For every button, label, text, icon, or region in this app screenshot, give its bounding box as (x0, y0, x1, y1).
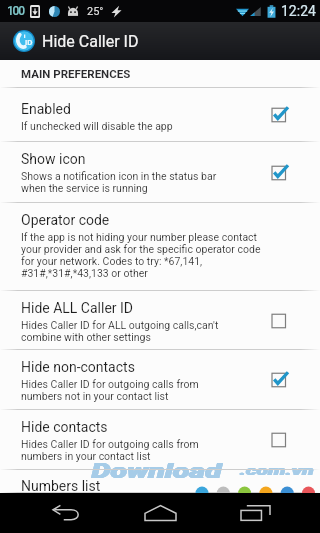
staticText: Hide ALL Caller ID (21, 300, 134, 316)
button[interactable]: Home (121, 493, 199, 533)
staticText: Hides Caller ID for ALL outgoing calls,c… (21, 319, 219, 331)
button[interactable]: Numbers list (0, 470, 320, 493)
staticText: your provider and ask for the specific o… (21, 243, 261, 255)
staticText: when the service is running (21, 182, 148, 194)
button[interactable]: Back (27, 493, 105, 533)
button[interactable]: Hide ALL Caller ID (0, 291, 320, 350)
button[interactable]: Hide non-contacts (0, 350, 320, 410)
staticText: 25° (87, 5, 104, 18)
button[interactable]: Hide contacts (0, 410, 320, 470)
staticText: for your network. Codes to try: *67,141, (21, 255, 203, 267)
staticText: Hide Caller ID (42, 32, 139, 51)
staticText: Shows a notification icon in the status … (21, 170, 217, 182)
staticText: ID (25, 38, 33, 47)
staticText: #31#,*31#,*43,133 or other (21, 267, 148, 279)
button[interactable]: Disabled, unchecked (272, 431, 292, 449)
staticText: Numbers list (21, 478, 101, 493)
staticText: If the app is not hiding your number ple… (21, 231, 258, 243)
button[interactable]: Enabled, checked (272, 164, 292, 182)
staticText: .com.vn (240, 462, 314, 478)
staticText: 100 (7, 4, 24, 18)
staticText: Hides Caller ID for outgoing calls from (21, 438, 199, 450)
staticText: Hide non-contacts (21, 359, 135, 375)
button[interactable]: Enabled (0, 88, 320, 142)
staticText: Enabled (21, 101, 71, 117)
staticText: Download (91, 460, 222, 483)
staticText: Download (92, 460, 223, 483)
staticText: If unchecked will disable the app (21, 120, 173, 132)
button[interactable]: Show icon (0, 142, 320, 203)
staticText: MAIN PREFERENCES (21, 67, 131, 80)
staticText: Download (91, 460, 222, 483)
button[interactable]: Disabled, unchecked (272, 312, 292, 330)
button[interactable]: Enabled, checked (272, 106, 292, 124)
staticText: .com.vn (240, 462, 314, 478)
button[interactable]: Operator code (0, 203, 320, 291)
staticText: Show icon (21, 151, 86, 167)
button[interactable]: Recent apps (216, 493, 294, 533)
staticText: .com.vn (239, 462, 313, 478)
staticText: Hides Caller ID for outgoing calls from (21, 378, 199, 390)
staticText: Hide contacts (21, 419, 108, 435)
staticText: numbers in your contact list (21, 450, 151, 462)
staticText: 12:24 (281, 3, 316, 19)
staticText: combine with other settings (21, 331, 151, 343)
staticText: Download (92, 460, 223, 483)
staticText: Operator code (21, 212, 110, 228)
button[interactable]: Enabled, checked (272, 371, 292, 389)
staticText: numbers not in your contact list (21, 390, 169, 402)
